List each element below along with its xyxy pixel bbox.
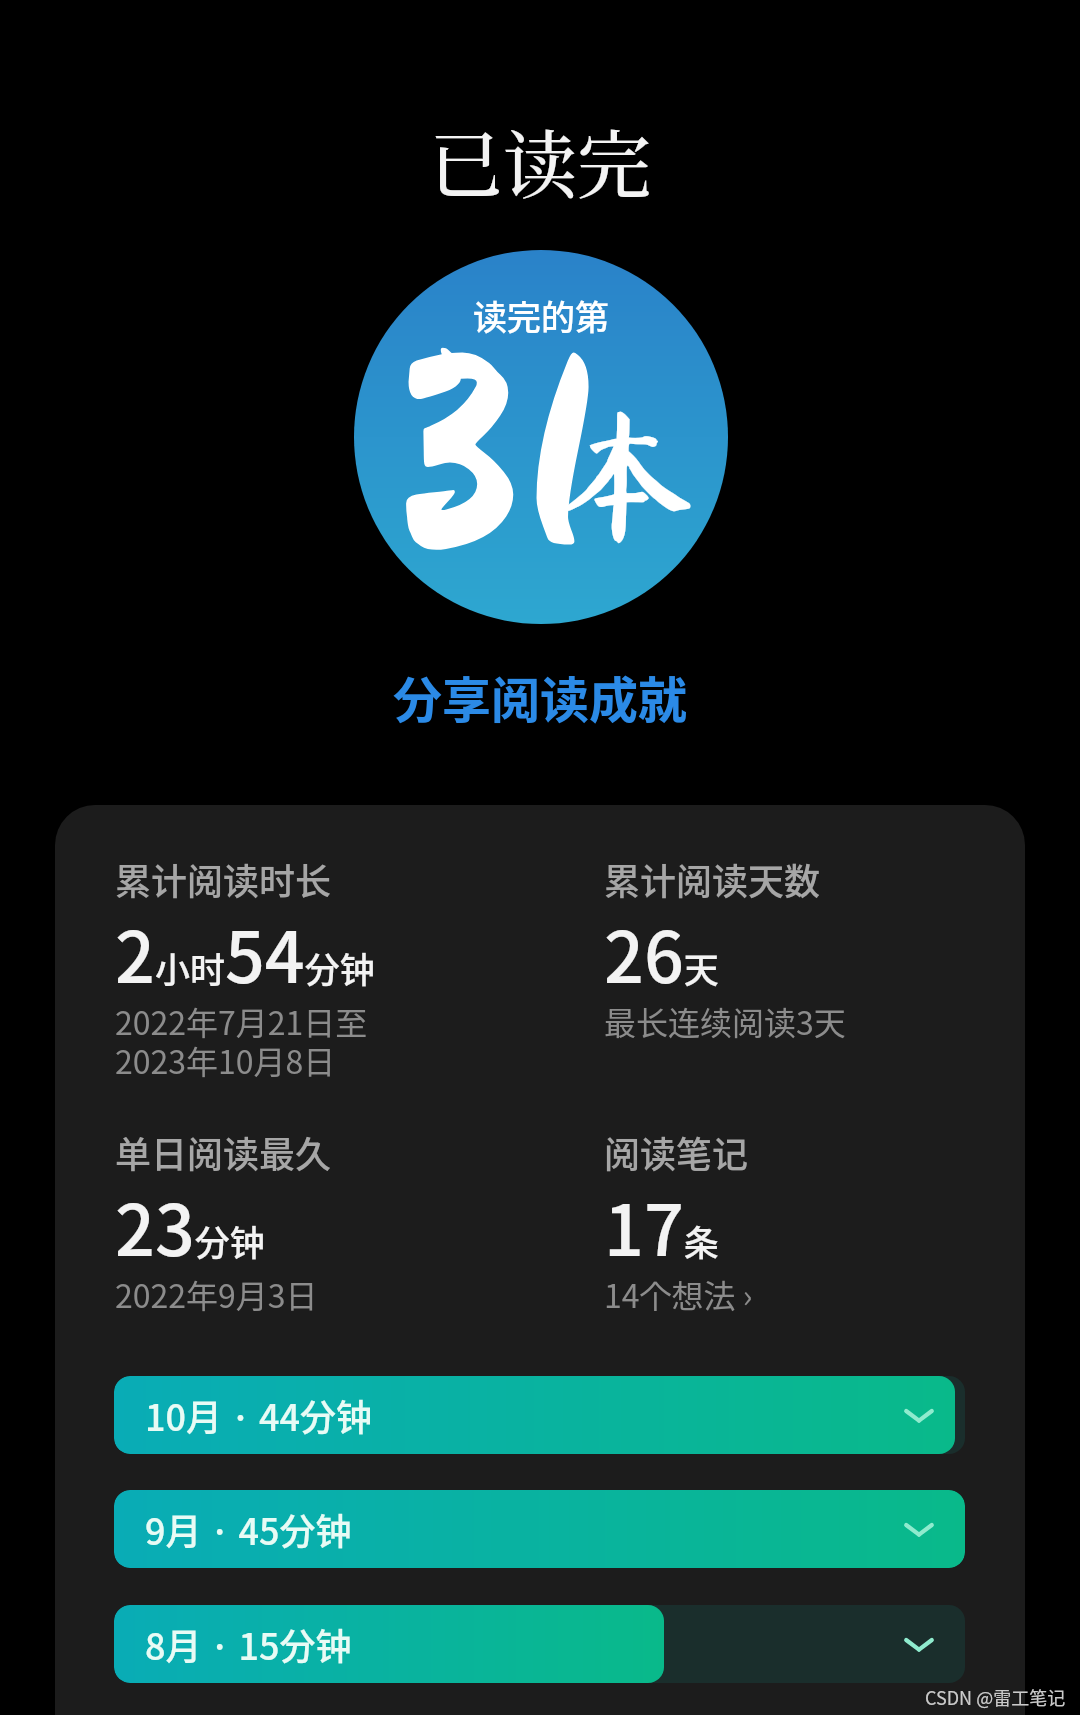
staticText: 2022年9月3日 [115,1271,318,1317]
staticText: 8月 · 15分钟 [145,1618,352,1670]
other: 展开 [899,1509,939,1549]
staticText: 23分钟 [115,1175,265,1276]
button[interactable]: 8月 · 15分钟 [114,1605,965,1683]
staticText: 31 [393,323,593,595]
staticText: 26天 [604,902,719,1003]
staticText: 累计阅读时长 [115,853,332,905]
staticText: 累计阅读天数 [604,853,821,905]
staticText: 单日阅读最久 [115,1126,332,1178]
staticText: 最长连续阅读3天 [604,998,846,1044]
staticText: 阅读笔记 [604,1126,749,1178]
staticText: 2023年10月8日 [115,1037,336,1083]
staticText: 17条 [604,1175,719,1276]
button[interactable]: 9月 · 45分钟 [114,1490,965,1568]
other: 展开 [899,1624,939,1664]
staticText: 分享阅读成就 [393,661,688,732]
button[interactable]: 14个想法 › [604,1271,753,1317]
staticText: 2022年7月21日至 [115,998,368,1044]
staticText: 2小时54分钟 [115,902,375,1003]
staticText: 本 [553,402,696,545]
button[interactable]: 10月 · 44分钟 [114,1376,965,1454]
staticText: 9月 · 45分钟 [145,1503,352,1555]
button[interactable]: 读完的第 31 本 [354,250,728,624]
staticText: 10月 · 44分钟 [145,1389,372,1441]
staticText: CSDN @雷工笔记 [925,1684,1066,1710]
other: 展开 [899,1395,939,1435]
staticText: 已读完 [0,107,1080,213]
button[interactable]: 分享阅读成就 [377,651,704,742]
staticText: 读完的第 [473,291,609,340]
